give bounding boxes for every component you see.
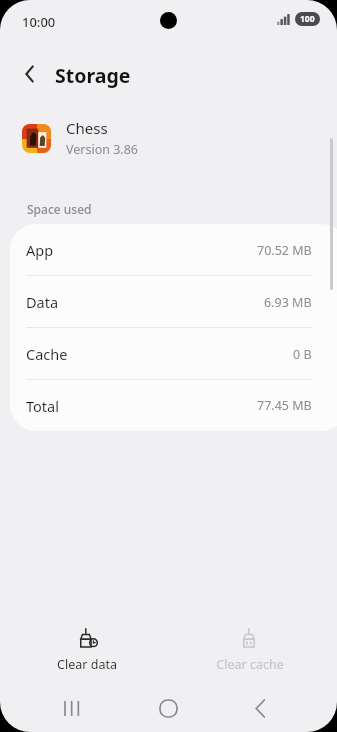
button[interactable]: Recents <box>50 686 94 730</box>
staticText: 10:00 <box>22 13 56 31</box>
staticText: App <box>26 240 54 260</box>
button[interactable]: Data <box>10 276 337 328</box>
button[interactable]: Clear data <box>27 624 147 677</box>
button[interactable]: Clear cache <box>190 624 310 677</box>
staticText: 70.52 MB <box>257 242 312 259</box>
staticText: 6.93 MB <box>264 294 312 311</box>
staticText: Total <box>26 396 59 416</box>
button[interactable]: App <box>10 224 337 276</box>
staticText: 0 B <box>293 346 312 363</box>
staticText: Clear cache <box>216 656 284 673</box>
button[interactable]: Total <box>10 380 337 431</box>
staticText: Space used <box>27 201 92 217</box>
staticText: Data <box>26 292 59 312</box>
staticText: 100 <box>300 13 315 25</box>
staticText: Storage <box>55 62 131 89</box>
staticText: Version 3.86 <box>66 141 139 158</box>
button[interactable]: Back <box>16 60 44 88</box>
button[interactable]: Cache <box>10 328 337 380</box>
button[interactable]: Back <box>238 686 282 730</box>
staticText: Cache <box>26 344 68 364</box>
button[interactable]: Home <box>146 686 190 730</box>
staticText: Chess <box>66 118 108 138</box>
staticText: Clear data <box>57 656 117 673</box>
staticText: 77.45 MB <box>257 397 312 414</box>
